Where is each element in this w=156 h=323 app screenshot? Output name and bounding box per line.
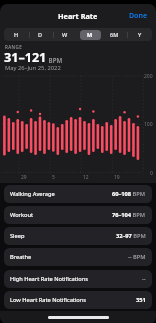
staticText: 351 xyxy=(136,296,146,304)
staticText: 100 xyxy=(144,121,153,128)
staticText: 12 xyxy=(83,174,89,181)
button[interactable]: H xyxy=(4,28,28,41)
staticText: 0 xyxy=(150,170,153,177)
staticText: H xyxy=(14,31,19,38)
staticText: 19 xyxy=(114,174,120,181)
staticText: Sleep xyxy=(10,232,25,240)
staticText: -- BPM xyxy=(128,253,146,261)
staticText: M xyxy=(87,31,93,38)
staticText: May 26–Jun 25, 2022 xyxy=(5,64,61,72)
staticText: RANGE xyxy=(5,44,23,50)
staticText: 200 xyxy=(144,73,153,80)
button[interactable]: Breathe xyxy=(4,248,152,266)
staticText: 60–108 BPM xyxy=(112,190,146,198)
button[interactable]: High Heart Rate Notifications xyxy=(4,270,152,288)
staticText: 29 xyxy=(21,174,27,181)
staticText: W xyxy=(62,31,68,38)
staticText: 5 xyxy=(52,174,55,181)
button[interactable]: M xyxy=(77,28,102,41)
button[interactable]: Done xyxy=(129,11,148,21)
staticText: BPM xyxy=(47,56,63,64)
staticText: 32–97 BPM xyxy=(116,232,146,240)
button[interactable]: D xyxy=(28,28,52,41)
staticText: Done xyxy=(129,11,148,21)
staticText: Workout xyxy=(10,211,34,219)
button[interactable]: Y xyxy=(127,28,152,41)
staticText: D xyxy=(38,31,43,38)
button[interactable]: Workout xyxy=(4,206,152,224)
button[interactable]: 6M xyxy=(102,28,127,41)
staticText: High Heart Rate Notifications xyxy=(10,275,88,283)
staticText: 76–104 BPM xyxy=(112,211,146,219)
button[interactable]: Sleep xyxy=(4,227,152,245)
staticText: Heart Rate xyxy=(58,11,98,21)
button[interactable]: Low Heart Rate Notifications xyxy=(4,291,152,309)
staticText: Breathe xyxy=(10,253,32,261)
button[interactable]: Walking Average xyxy=(4,185,152,203)
staticText: 6M xyxy=(110,31,119,38)
staticText: -- xyxy=(142,275,146,283)
staticText: Low Heart Rate Notifications xyxy=(10,296,87,304)
staticText: Walking Average xyxy=(10,190,55,198)
button[interactable]: W xyxy=(52,28,77,41)
staticText: Y xyxy=(138,31,142,38)
staticText: 31–121 xyxy=(4,49,47,66)
